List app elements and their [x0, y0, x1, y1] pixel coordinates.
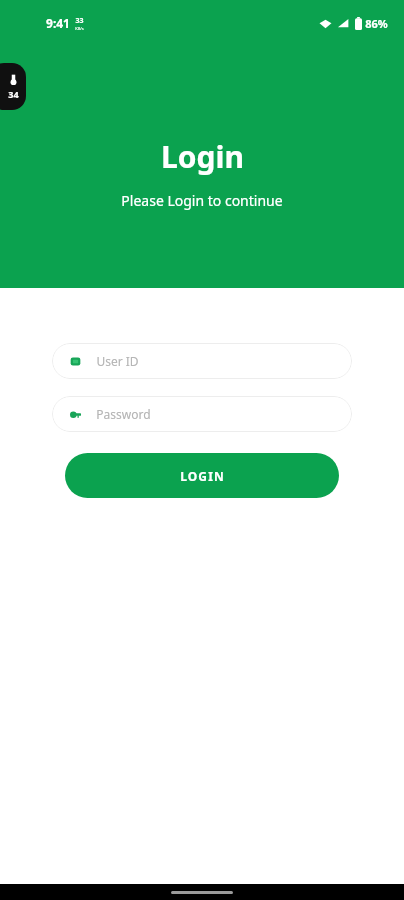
staticText: Password	[96, 406, 151, 422]
button[interactable]: Password	[52, 396, 352, 432]
button[interactable]: LOGIN	[65, 453, 339, 498]
staticText: Login	[161, 136, 244, 177]
staticText: User ID	[96, 353, 139, 369]
staticText: 86%	[365, 16, 388, 31]
staticText: 34	[8, 88, 19, 100]
staticText: 9:41	[46, 15, 70, 31]
staticText: 33	[75, 16, 84, 26]
button[interactable]: Temperature notification 34	[0, 63, 26, 110]
staticText: Please Login to continue	[121, 191, 283, 210]
staticText: LOGIN	[180, 468, 225, 484]
staticText: KB/s	[75, 26, 84, 31]
button[interactable]: User ID	[52, 343, 352, 379]
